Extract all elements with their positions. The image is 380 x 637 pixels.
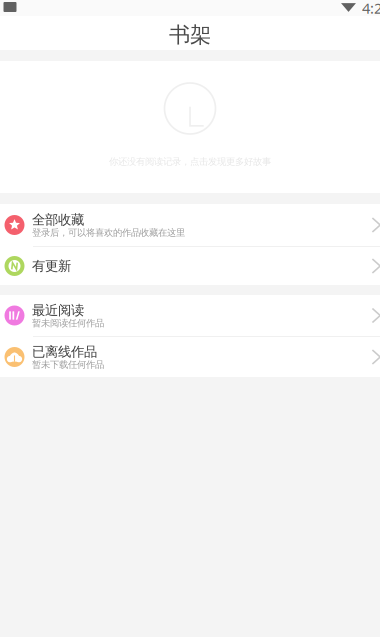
button[interactable]: 有更新 bbox=[0, 247, 380, 285]
button[interactable]: 已离线作品 bbox=[0, 337, 380, 377]
staticText: 有更新 bbox=[32, 258, 71, 274]
staticText: 全部收藏 bbox=[32, 212, 84, 228]
staticText: 已离线作品 bbox=[32, 344, 97, 360]
staticText: 登录后，可以将喜欢的作品收藏在这里 bbox=[32, 227, 185, 238]
staticText: 书架 bbox=[169, 22, 211, 48]
button[interactable]: 最近阅读 bbox=[0, 295, 380, 337]
staticText: 暂未下载任何作品 bbox=[32, 359, 104, 370]
staticText: 最近阅读 bbox=[32, 302, 84, 318]
button[interactable]: 全部收藏 bbox=[0, 204, 380, 247]
staticText: 4:2 bbox=[362, 0, 380, 18]
staticText: 暂未阅读任何作品 bbox=[32, 317, 104, 329]
staticText: 你还没有阅读记录，点击发现更多好故事 bbox=[109, 156, 271, 167]
